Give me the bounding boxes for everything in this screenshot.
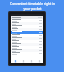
button[interactable]: Stops bbox=[19, 59, 27, 63]
staticText: Convenient timetable right in bbox=[10, 2, 55, 6]
button[interactable]: Route 9 bbox=[11, 43, 43, 46]
button[interactable]: Route 7 bbox=[11, 37, 43, 40]
button[interactable]: Selected route bbox=[11, 31, 43, 34]
button[interactable]: Favorites bbox=[27, 59, 35, 63]
button[interactable]: Route 11 bbox=[11, 49, 43, 52]
button[interactable]: Route 8 bbox=[11, 40, 43, 43]
button[interactable]: Settings bbox=[35, 59, 43, 63]
button[interactable]: Routes bbox=[11, 59, 19, 63]
button[interactable]: Route 1 bbox=[11, 19, 43, 22]
button[interactable]: Route 4 bbox=[11, 28, 43, 31]
button[interactable]: Route 12 bbox=[11, 52, 43, 55]
staticText: your pocket bbox=[23, 7, 42, 11]
button[interactable]: Route 2 bbox=[11, 22, 43, 25]
button[interactable]: Route 6 bbox=[11, 34, 43, 37]
button[interactable]: Route 3 bbox=[11, 25, 43, 28]
button[interactable]: Route 10 bbox=[11, 46, 43, 49]
button[interactable] bbox=[11, 16, 43, 19]
